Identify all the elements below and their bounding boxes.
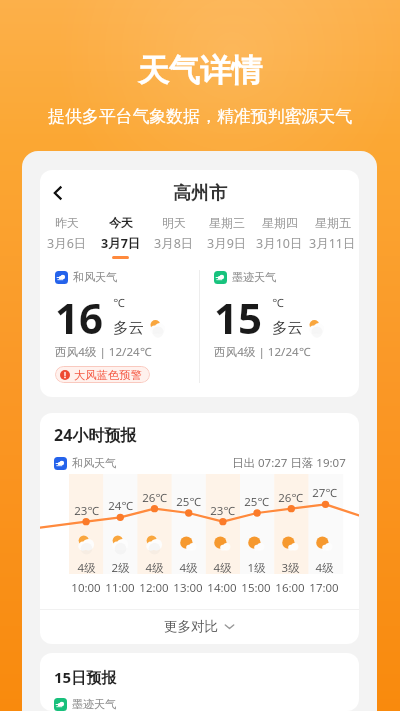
staticText: 26℃: [278, 490, 303, 506]
staticText: 明天: [162, 215, 186, 230]
staticText: 提供多平台气象数据，精准预判蜜源天气: [0, 106, 400, 127]
button[interactable]: 星期四: [253, 215, 306, 259]
staticText: 4级: [145, 560, 164, 576]
staticText: 24小时预报: [54, 424, 137, 446]
button[interactable]: Back: [40, 175, 76, 211]
button[interactable]: 大风蓝色预警: [55, 366, 150, 383]
staticText: 天气详情: [0, 51, 400, 90]
staticText: 3月10日: [256, 235, 303, 252]
staticText: 日出 07:27 日落 19:07: [232, 455, 346, 471]
staticText: 4级: [179, 560, 198, 576]
staticText: 3月6日: [47, 235, 87, 252]
staticText: 23℃: [210, 503, 235, 519]
staticText: 26℃: [142, 490, 167, 506]
staticText: 墨迹天气: [232, 270, 276, 284]
staticText: 星期四: [262, 215, 298, 230]
staticText: 3月8日: [154, 235, 194, 252]
staticText: 25℃: [244, 494, 269, 510]
staticText: 10:00: [71, 580, 101, 596]
button[interactable]: 星期三: [200, 215, 253, 259]
staticText: 25℃: [176, 494, 201, 510]
staticText: 和风天气: [72, 456, 116, 470]
button[interactable]: 更多对比: [40, 610, 359, 644]
staticText: 3月9日: [207, 235, 247, 252]
staticText: 3月7日: [101, 235, 141, 252]
staticText: 昨天: [55, 215, 79, 230]
staticText: 16:00: [275, 580, 305, 596]
staticText: 12:00: [139, 580, 169, 596]
staticText: 和风天气: [73, 270, 117, 284]
staticText: 13:00: [173, 580, 203, 596]
staticText: 3月11日: [309, 235, 356, 252]
staticText: 3级: [281, 560, 300, 576]
staticText: 4级: [77, 560, 96, 576]
staticText: ℃: [272, 295, 284, 311]
button[interactable]: 明天: [147, 215, 200, 259]
staticText: ℃: [113, 295, 125, 311]
staticText: 14:00: [207, 580, 237, 596]
staticText: 今天: [109, 215, 133, 230]
staticText: 墨迹天气: [72, 697, 116, 711]
staticText: 大风蓝色预警: [74, 368, 142, 382]
staticText: 15: [214, 289, 263, 335]
button[interactable]: 星期五: [306, 215, 359, 259]
button[interactable]: 昨天: [40, 215, 94, 259]
staticText: 23℃: [74, 503, 99, 519]
staticText: 2级: [111, 560, 130, 576]
button[interactable]: 今天: [94, 215, 147, 259]
staticText: 更多对比: [164, 618, 218, 635]
staticText: 1级: [247, 560, 266, 576]
staticText: 16: [55, 289, 104, 335]
staticText: 西风4级 | 12/24℃: [214, 344, 311, 360]
staticText: 11:00: [105, 580, 135, 596]
staticText: 15日预报: [54, 667, 117, 687]
staticText: 多云: [272, 318, 303, 337]
staticText: 西风4级 | 12/24℃: [55, 344, 152, 360]
staticText: 高州市: [173, 182, 227, 205]
staticText: 17:00: [309, 580, 339, 596]
staticText: 多云: [113, 318, 144, 337]
staticText: 27℃: [312, 485, 337, 501]
staticText: 24℃: [108, 498, 133, 514]
staticText: 星期三: [209, 215, 245, 230]
staticText: 4级: [213, 560, 232, 576]
staticText: 15:00: [241, 580, 271, 596]
staticText: 4级: [315, 560, 334, 576]
staticText: 星期五: [315, 215, 351, 230]
